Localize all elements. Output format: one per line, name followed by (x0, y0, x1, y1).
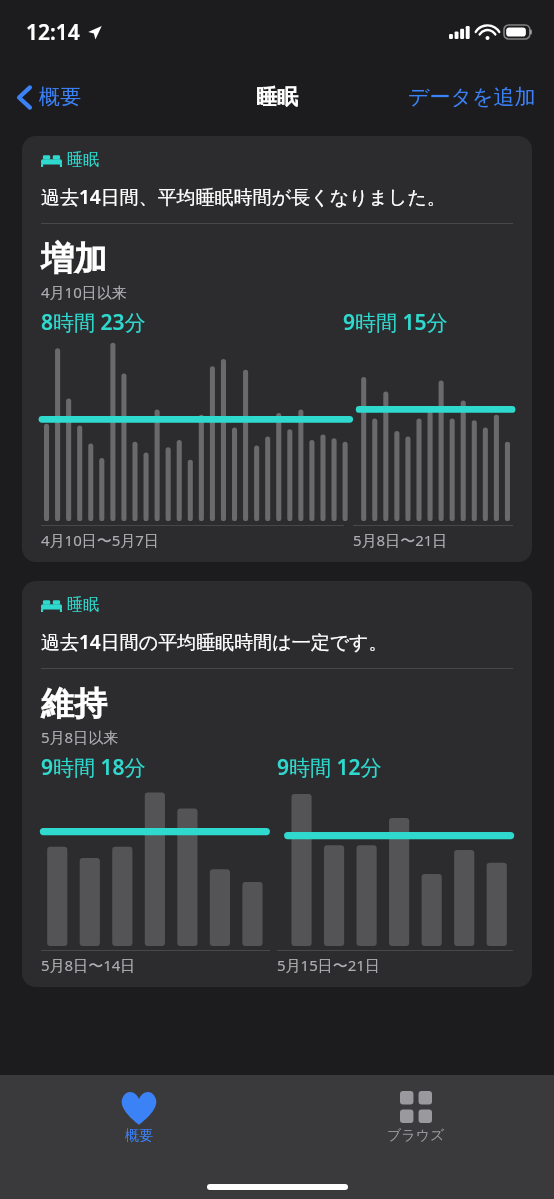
staticText: 増加 (41, 238, 107, 280)
staticText: 4月10日〜5月7日 (41, 530, 159, 550)
button[interactable]: データを追加 (404, 78, 540, 116)
staticText: 5月8日以来 (41, 727, 119, 747)
staticText: 過去14日間の平均睡眠時間は一定です。 (41, 629, 388, 655)
staticText: 維持 (41, 683, 107, 725)
staticText: 睡眠 (67, 595, 99, 615)
staticText: 過去14日間、平均睡眠時間が長くなりました。 (41, 184, 446, 210)
staticText: 12:14 (26, 18, 80, 47)
button[interactable]: 睡眠 (22, 581, 532, 987)
staticText: ブラウズ (387, 1127, 445, 1145)
staticText: 9時間 12分 (277, 753, 382, 782)
button[interactable]: ブラウズ (371, 1089, 461, 1147)
staticText: 睡眠 (256, 84, 298, 110)
staticText: データを追加 (408, 84, 536, 110)
staticText: 5月15日〜21日 (277, 955, 380, 975)
staticText: 8時間 23分 (41, 308, 146, 337)
button[interactable]: 概要 (104, 1089, 174, 1147)
button[interactable]: 概要 (14, 78, 85, 116)
staticText: 9時間 18分 (41, 753, 146, 782)
staticText: 概要 (125, 1127, 153, 1145)
button[interactable]: 睡眠 (22, 136, 532, 562)
staticText: 概要 (39, 84, 81, 110)
staticText: 4月10日以来 (41, 282, 127, 302)
staticText: 9時間 15分 (343, 308, 448, 337)
staticText: 5月8日〜14日 (41, 955, 136, 975)
staticText: 睡眠 (67, 150, 99, 170)
staticText: 5月8日〜21日 (353, 530, 448, 550)
